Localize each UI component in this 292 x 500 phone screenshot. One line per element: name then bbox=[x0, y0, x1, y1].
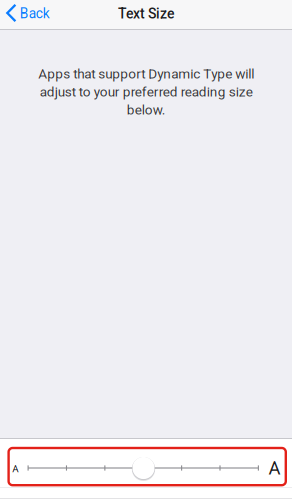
staticText: Back bbox=[20, 5, 50, 22]
staticText: Apps that support Dynamic Type will adju… bbox=[38, 66, 254, 118]
staticText: A bbox=[12, 463, 18, 475]
button[interactable]: Text size slider bbox=[0, 439, 292, 487]
staticText: A bbox=[268, 457, 280, 479]
button[interactable]: Back bbox=[0, 0, 60, 29]
staticText: Text Size bbox=[118, 5, 174, 22]
